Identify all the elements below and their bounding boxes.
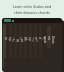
staticText: D minor <box>7 39 23 43</box>
staticText: E minor <box>12 39 28 43</box>
button[interactable]: D minor <box>13 24 17 60</box>
button[interactable]: Scale selector <box>4 19 11 22</box>
button[interactable]: F major <box>23 24 27 60</box>
staticText: Learn color Scales and <box>5 4 59 9</box>
button[interactable]: E minor <box>18 24 22 60</box>
staticText: G major <box>24 37 36 41</box>
staticText: Diatonic scale <box>43 36 55 44</box>
staticText: B dim <box>34 37 46 41</box>
button[interactable]: B dim <box>38 24 42 60</box>
button[interactable]: G major <box>28 24 32 60</box>
button[interactable]: Scale selector <box>2 18 62 72</box>
staticText: F major <box>19 37 31 41</box>
staticText: their diatonic chords <box>5 10 59 15</box>
button[interactable]: Diatonic scale <box>45 24 53 62</box>
button[interactable]: A minor <box>33 24 37 60</box>
button[interactable]: C major <box>8 24 12 60</box>
staticText: C major <box>4 37 16 41</box>
staticText: A minor <box>27 39 43 43</box>
